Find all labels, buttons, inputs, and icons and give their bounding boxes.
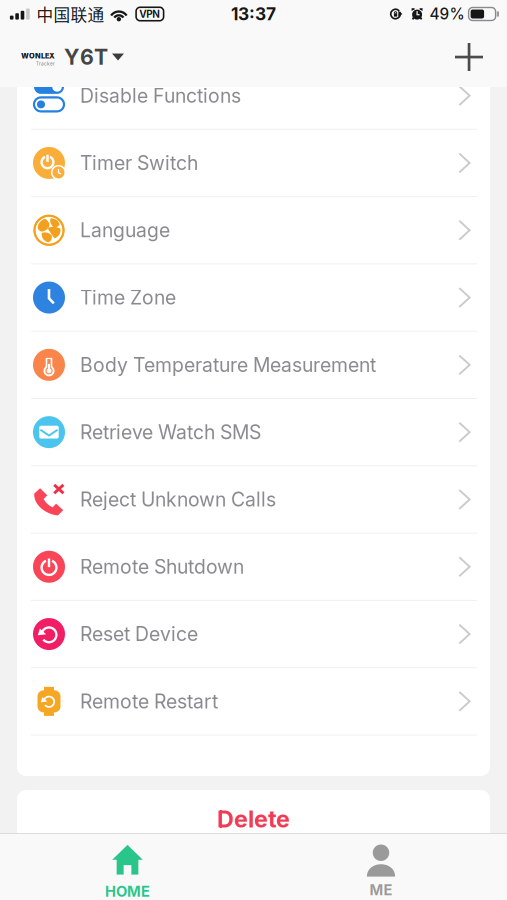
staticText: Timer Switch — [80, 151, 198, 175]
button[interactable]: Time Zone — [17, 264, 490, 332]
button[interactable]: ME — [255, 834, 507, 900]
staticText: Reset Device — [80, 622, 198, 646]
button[interactable]: Language — [17, 197, 490, 264]
staticText: Tracker — [36, 61, 55, 67]
staticText: Remote Shutdown — [80, 555, 244, 578]
staticText: Language — [80, 219, 170, 242]
staticText: HOME — [105, 882, 150, 900]
staticText: 13:37 — [231, 3, 276, 24]
staticText: VPN — [139, 8, 160, 20]
button[interactable]: Add device — [445, 33, 493, 81]
staticText: Disable Functions — [80, 84, 241, 107]
staticText: Body Temperature Measurement — [80, 353, 376, 377]
button[interactable]: HOME — [0, 834, 255, 900]
button[interactable]: Remote Shutdown — [17, 534, 490, 601]
button[interactable]: Delete — [17, 790, 490, 848]
staticText: ME — [369, 881, 392, 899]
button[interactable]: Reset Device — [17, 601, 490, 668]
staticText: Reject Unknown Calls — [80, 488, 276, 511]
staticText: WONLEX — [21, 51, 55, 60]
button[interactable]: Y6T — [59, 37, 132, 77]
button[interactable]: Retrieve Watch SMS — [17, 399, 490, 466]
button[interactable]: Body Temperature Measurement — [17, 332, 490, 399]
button[interactable]: Remote Restart — [17, 668, 490, 735]
button[interactable]: Reject Unknown Calls — [17, 466, 490, 534]
staticText: Remote Restart — [80, 690, 218, 713]
staticText: 中国联通 — [37, 2, 105, 26]
staticText: Time Zone — [80, 286, 176, 309]
staticText: 49% — [430, 5, 465, 23]
button[interactable]: Disable Functions — [17, 62, 490, 130]
staticText: Delete — [217, 805, 290, 833]
button[interactable]: Timer Switch — [17, 130, 490, 197]
staticText: Y6T — [64, 44, 108, 70]
staticText: Retrieve Watch SMS — [80, 420, 261, 444]
